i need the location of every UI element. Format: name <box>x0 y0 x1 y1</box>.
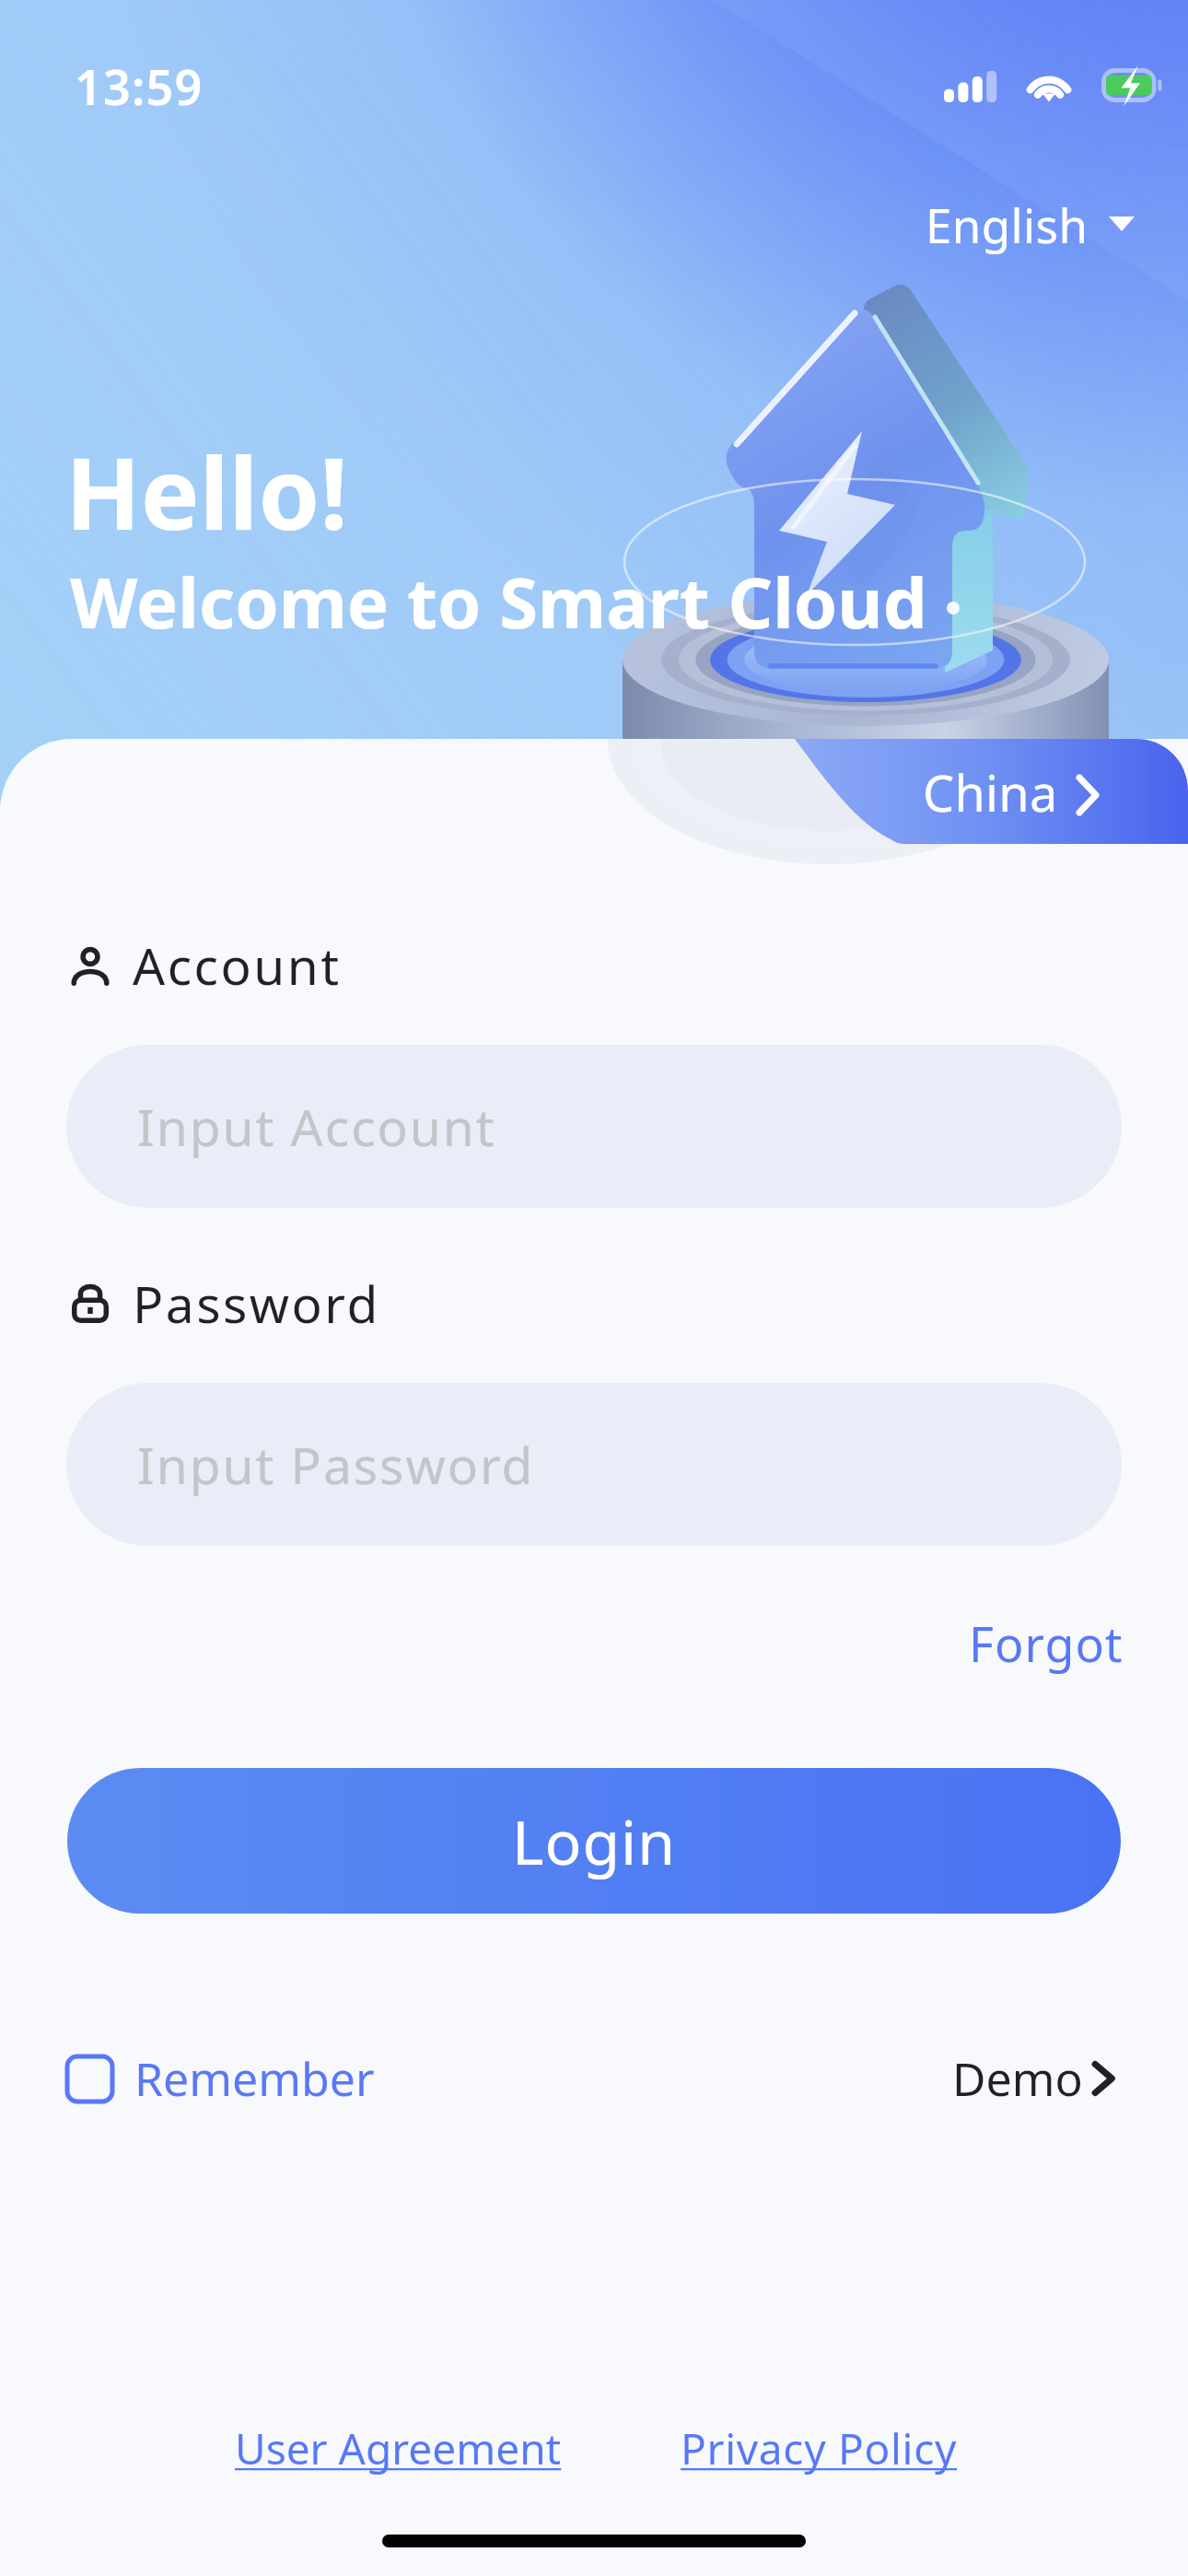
button[interactable]: Privacy Policy <box>670 2408 969 2488</box>
staticText: English <box>926 193 1089 256</box>
staticText: Hello! <box>65 425 348 559</box>
staticText: Privacy Policy <box>681 2419 958 2477</box>
button[interactable]: Forgot <box>958 1603 1135 1683</box>
button[interactable]: Input Password <box>66 1383 1122 1546</box>
staticText: Login <box>512 1799 676 1882</box>
staticText: Account <box>133 931 342 1000</box>
button[interactable]: English <box>918 181 1142 267</box>
staticText: Welcome to Smart Cloud <box>70 554 927 650</box>
staticText: Remember <box>134 2047 375 2110</box>
staticText: China <box>923 758 1058 826</box>
staticText: Forgot <box>969 1610 1124 1676</box>
button[interactable]: Input Account <box>66 1045 1122 1208</box>
button[interactable]: Login <box>67 1768 1121 1914</box>
staticText: Password <box>133 1269 380 1338</box>
staticText: Input Password <box>137 1430 535 1499</box>
button[interactable]: User Agreement <box>224 2408 573 2488</box>
staticText: User Agreement <box>235 2419 562 2477</box>
staticText: Demo <box>952 2047 1083 2110</box>
button[interactable]: Demo <box>952 2047 1116 2110</box>
button[interactable]: Remember <box>67 2047 375 2110</box>
staticText: 13:59 <box>75 53 204 119</box>
staticText: Input Account <box>137 1092 496 1161</box>
button[interactable]: China <box>923 758 1099 826</box>
